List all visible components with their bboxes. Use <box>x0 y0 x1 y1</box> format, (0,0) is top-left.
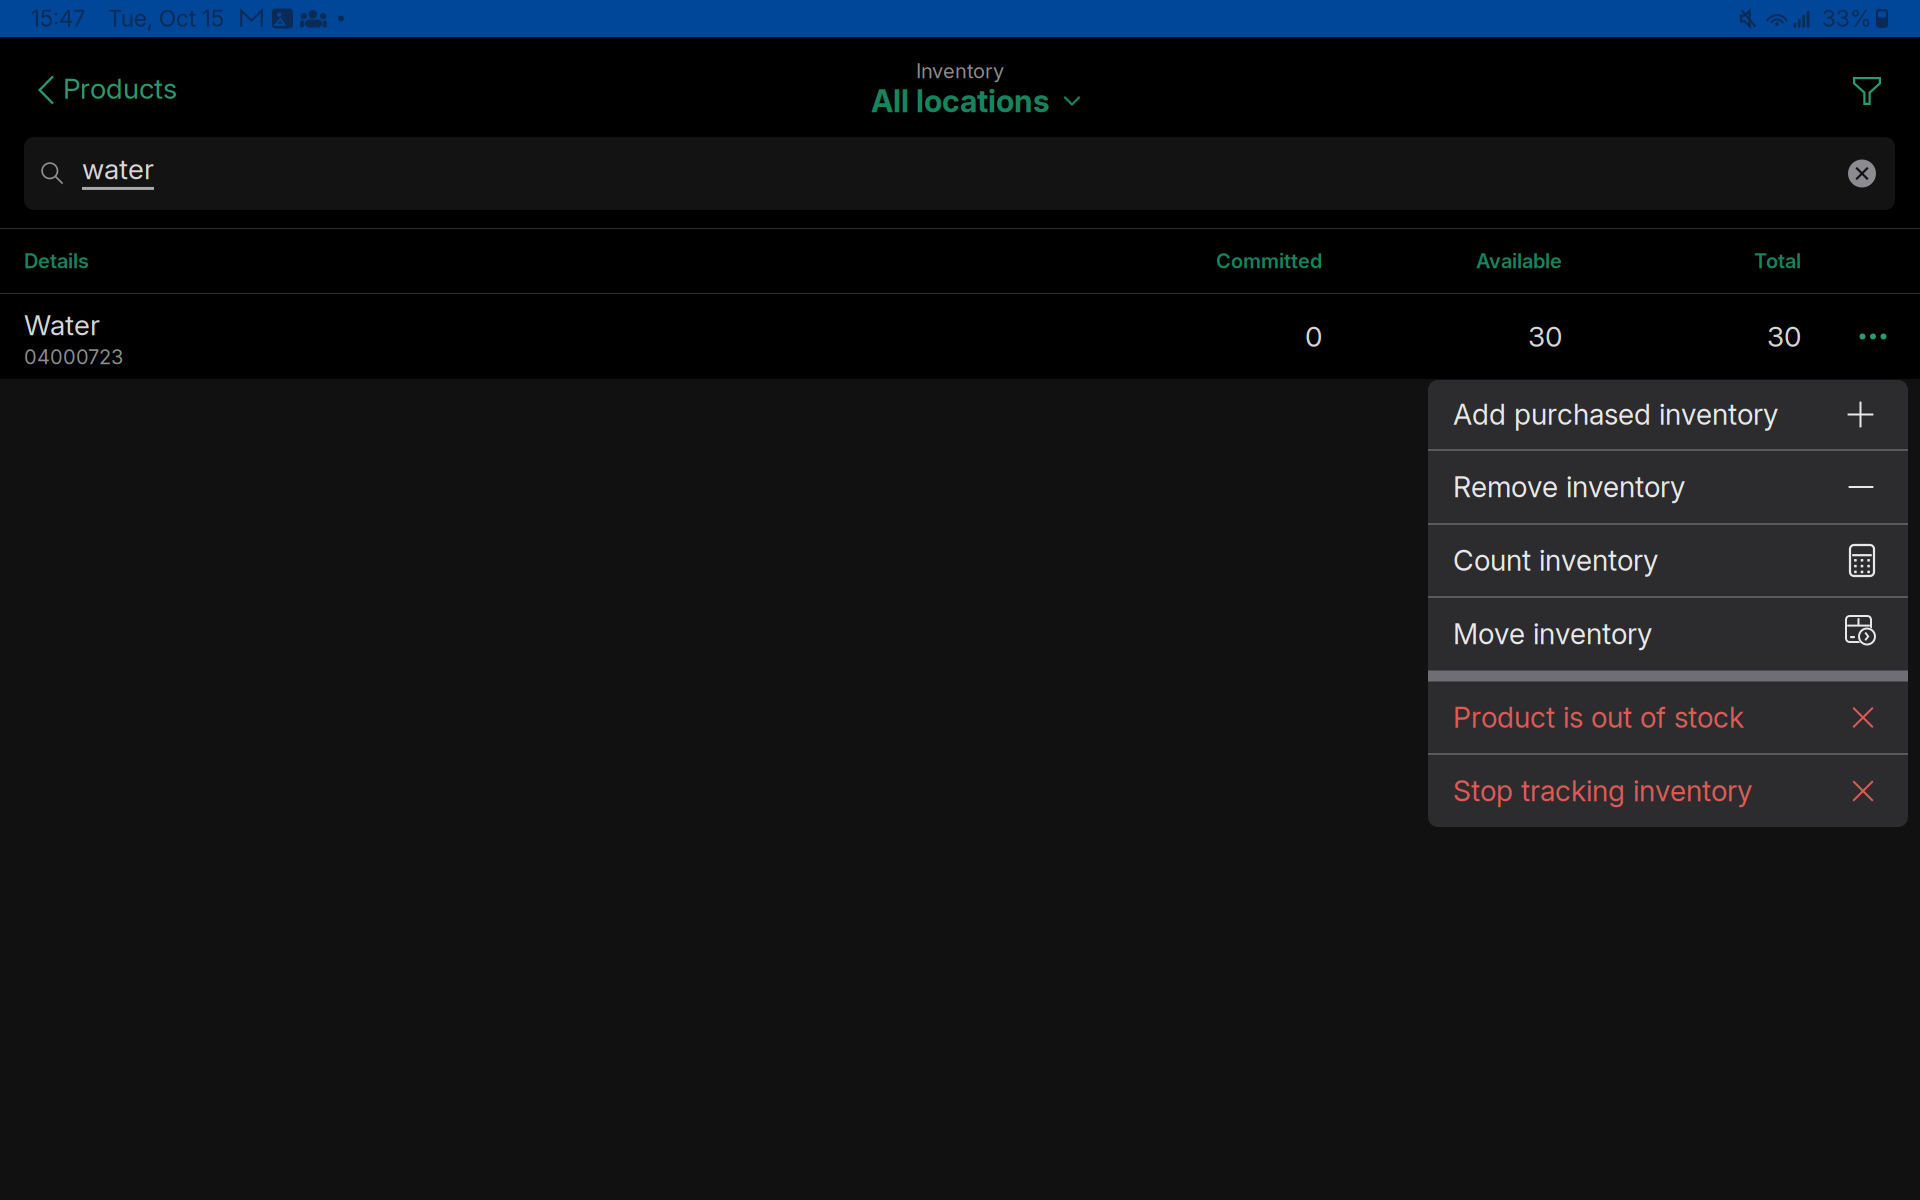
staticText: 15:47 <box>31 5 86 32</box>
staticText: 04000723 <box>24 345 123 369</box>
button[interactable]: Move inventory <box>1428 597 1908 670</box>
staticText: 0 <box>1305 320 1322 353</box>
staticText: Products <box>63 72 177 105</box>
button[interactable]: Count inventory <box>1428 524 1908 596</box>
staticText: Move inventory <box>1453 617 1652 651</box>
staticText: Remove inventory <box>1453 470 1685 504</box>
button[interactable]: Products <box>0 37 197 137</box>
button[interactable]: All locations <box>796 79 1156 123</box>
staticText: Committed <box>1216 249 1322 273</box>
staticText: 30 <box>1528 320 1562 353</box>
staticText: Water <box>24 308 100 342</box>
staticText: water <box>82 152 154 186</box>
staticText: All locations <box>871 82 1050 119</box>
button[interactable]: Clear search <box>1829 137 1895 210</box>
button[interactable]: Filter <box>1825 41 1909 141</box>
staticText: Details <box>24 249 89 273</box>
staticText: 30 <box>1767 320 1801 353</box>
staticText: Total <box>1754 249 1801 273</box>
staticText: 33% <box>1822 5 1872 32</box>
staticText: Available <box>1476 249 1562 273</box>
button[interactable]: Add purchased inventory <box>1428 379 1908 449</box>
button[interactable]: More actions <box>1825 294 1920 379</box>
button[interactable]: Water <box>0 294 1810 379</box>
staticText: Add purchased inventory <box>1453 397 1778 432</box>
staticText: Product is out of stock <box>1453 700 1744 735</box>
button[interactable]: Remove inventory <box>1428 450 1908 523</box>
staticText: Inventory <box>916 59 1004 83</box>
staticText: Count inventory <box>1453 543 1658 578</box>
button[interactable]: Product is out of stock <box>1428 681 1908 753</box>
staticText: Stop tracking inventory <box>1453 774 1752 808</box>
staticText: Tue, Oct 15 <box>108 5 224 32</box>
button[interactable]: Stop tracking inventory <box>1428 754 1908 827</box>
